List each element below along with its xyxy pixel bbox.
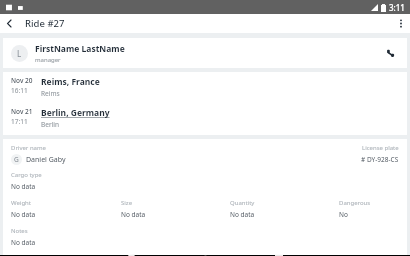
staticText: G xyxy=(14,155,19,164)
staticText: Driver name xyxy=(11,144,46,152)
staticText: Cargo type xyxy=(11,171,42,179)
staticText: # DY-928-CS xyxy=(361,155,399,164)
staticText: No xyxy=(339,210,348,219)
staticText: manager xyxy=(35,56,61,64)
button[interactable]: Call xyxy=(381,44,399,62)
staticText: Berlin, Germany xyxy=(41,107,110,119)
staticText: Berlin xyxy=(41,120,59,129)
staticText: Ride #27 xyxy=(25,17,65,30)
staticText: License plate xyxy=(362,144,399,152)
staticText: Notes xyxy=(11,227,28,235)
staticText: Dangerous xyxy=(339,199,371,207)
staticText: L xyxy=(17,48,22,59)
button[interactable]: Nov 21 xyxy=(3,107,407,129)
button[interactable]: More options xyxy=(391,14,410,33)
staticText: 3:11 xyxy=(389,2,405,13)
staticText: Size xyxy=(121,199,133,207)
staticText: No data xyxy=(11,182,36,191)
staticText: Reims, France xyxy=(41,76,100,88)
staticText: No data xyxy=(11,238,36,247)
staticText: Nov 20 xyxy=(11,76,33,85)
button[interactable]: Nov 20 xyxy=(3,76,407,98)
staticText: Quantity xyxy=(230,199,255,207)
button[interactable]: Recents xyxy=(260,255,298,256)
button[interactable]: Back xyxy=(0,14,19,33)
button[interactable]: L xyxy=(3,38,407,68)
staticText: No data xyxy=(230,210,255,219)
staticText: No data xyxy=(11,210,36,219)
staticText: Daniel Gaby xyxy=(26,155,66,165)
staticText: Nov 21 xyxy=(11,107,33,116)
staticText: FirstName LastName xyxy=(35,43,125,55)
staticText: Weight xyxy=(11,199,31,207)
button[interactable]: Back xyxy=(112,255,150,256)
button[interactable]: Home xyxy=(186,255,224,256)
staticText: 16:11 xyxy=(11,86,28,95)
staticText: No data xyxy=(121,210,146,219)
staticText: 17:11 xyxy=(11,117,28,126)
staticText: Reims xyxy=(41,89,60,98)
